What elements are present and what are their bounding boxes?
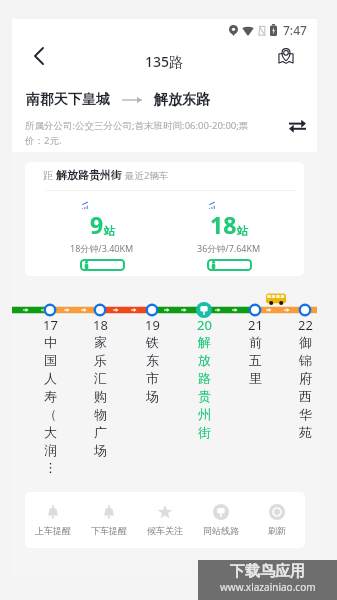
staticText: 刷新 [268,525,286,536]
staticText: 里 [249,370,262,388]
staticText: 府 [299,370,312,388]
staticText: 御 [299,334,312,352]
staticText: 18分钟/3.40KM [70,242,134,254]
staticText: 18 [93,316,108,334]
button[interactable]: 上车提醒 [25,492,81,548]
staticText: 下载鸟应用 [230,562,305,581]
staticText: 五 [249,352,262,370]
staticText: 站 [237,224,248,238]
staticText: 铁 [146,334,159,352]
staticText: 中 [44,334,57,352]
staticText: 解放东路 [154,91,210,109]
staticText: 购 [94,388,107,406]
staticText: 锦 [299,352,312,370]
staticText: 苑 [299,424,312,442]
staticText: 家 [94,334,107,352]
staticText: 场 [94,442,107,460]
staticText: 路 [198,370,211,388]
staticText: 市 [146,370,159,388]
staticText: 国 [44,352,57,370]
staticText: 贵 [198,388,211,406]
staticText: 17 [43,316,58,334]
staticText: 36分钟/7.64KM [197,242,261,254]
staticText: 9 [90,209,104,240]
staticText: 同站线路 [203,525,239,536]
button[interactable]: Swap direction [284,113,310,139]
button[interactable]: 22 [293,316,317,442]
staticText: 候车关注 [147,525,183,536]
button[interactable]: 18 [88,316,112,460]
button[interactable]: Back [23,40,55,72]
button[interactable]: 20 [192,316,216,442]
button[interactable]: 候车关注 [137,492,193,548]
staticText: 华 [299,406,312,424]
staticText: www.xlazainiao.com [220,580,316,594]
staticText: 场 [146,388,159,406]
staticText: 广 [94,424,107,442]
staticText: 下车提醒 [91,525,127,536]
staticText: 街 [198,424,211,442]
staticText: 润 [44,442,57,460]
staticText: 解放路贵州街 [56,168,122,182]
staticText: 放 [198,352,211,370]
button[interactable]: 17 [38,316,62,478]
staticText: 物 [94,406,107,424]
staticText: 解 [198,334,211,352]
staticText: 21 [248,316,263,334]
button[interactable]: 距 [25,162,304,276]
staticText: 东 [146,352,159,370]
staticText: 人 [44,370,57,388]
staticText: 距 [43,169,53,182]
staticText: 大 [44,424,57,442]
staticText: 上车提醒 [35,525,71,536]
staticText: ⋮ [44,460,57,478]
staticText: 站 [104,224,115,238]
staticText: 所属分公司:公交三分公司;首末班时间:06:00-20:00;票价：2元. [25,119,257,147]
staticText: 7:47 [283,22,307,38]
button[interactable]: 同站线路 [193,492,249,548]
staticText: 寿 [44,388,57,406]
staticText: 最近2辆车 [125,169,169,182]
staticText: 州 [198,406,211,424]
staticText: 18 [210,209,237,240]
staticText: 22 [298,316,313,334]
staticText: 20 [197,316,212,334]
button[interactable]: 下车提醒 [81,492,137,548]
button[interactable]: 刷新 [249,492,305,548]
button[interactable]: 19 [140,316,164,406]
staticText: 南郡天下皇城 [26,91,110,109]
staticText: 135路 [145,52,184,71]
staticText: 乐 [94,352,107,370]
button[interactable]: Map [270,40,302,72]
staticText: 19 [145,316,160,334]
staticText: 前 [249,334,262,352]
staticText: 西 [299,388,312,406]
button[interactable]: 21 [243,316,267,388]
staticText: 汇 [94,370,107,388]
staticText: （ [44,406,57,424]
